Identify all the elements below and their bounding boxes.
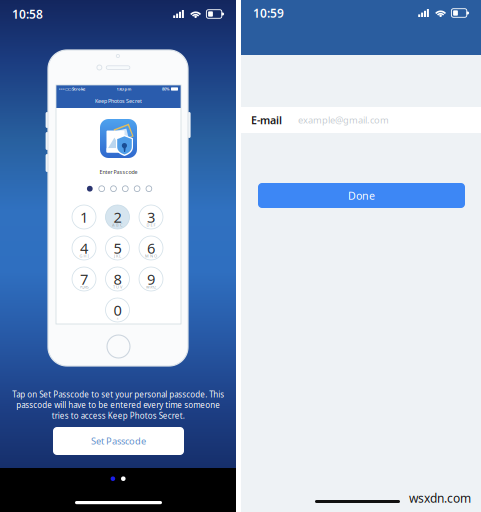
- staticText: 3: [147, 207, 155, 227]
- staticText: 8: [113, 269, 121, 289]
- staticText: 7: [80, 269, 88, 289]
- staticText: •••○○ Stroke: [59, 86, 86, 92]
- staticText: A B C: [112, 222, 123, 228]
- staticText: 10:59: [253, 5, 284, 21]
- staticText: 0: [113, 300, 121, 320]
- staticText: T U V: [113, 284, 122, 290]
- staticText: example@gmail.com: [298, 114, 389, 126]
- staticText: Keep Photos Secret: [95, 97, 142, 105]
- staticText: wsxdn.com: [409, 490, 471, 506]
- staticText: 5: [113, 238, 121, 258]
- staticText: J K L: [114, 253, 121, 259]
- staticText: Tap on Set Passcode to set your personal…: [12, 389, 224, 421]
- staticText: 1:43 pm: [116, 86, 131, 92]
- staticText: 6: [147, 238, 155, 258]
- staticText: Done: [348, 188, 375, 203]
- staticText: D E F: [146, 222, 155, 228]
- staticText: 4: [80, 238, 88, 258]
- staticText: M N O: [145, 253, 157, 259]
- staticText: Enter Passcode: [99, 168, 137, 176]
- staticText: 1: [80, 207, 88, 227]
- staticText: 80%: [162, 86, 170, 92]
- staticText: PQRS: [79, 284, 88, 290]
- staticText: +: [116, 315, 118, 321]
- button[interactable]: Set Passcode: [53, 427, 184, 455]
- staticText: 2: [113, 207, 121, 227]
- staticText: G H I: [79, 253, 88, 259]
- staticText: Set Passcode: [91, 435, 146, 447]
- staticText: 9: [147, 269, 155, 289]
- staticText: 10:58: [12, 6, 43, 22]
- staticText: E-mail: [251, 113, 282, 127]
- staticText: WXYZ: [146, 284, 156, 290]
- button[interactable]: Done: [258, 183, 465, 208]
